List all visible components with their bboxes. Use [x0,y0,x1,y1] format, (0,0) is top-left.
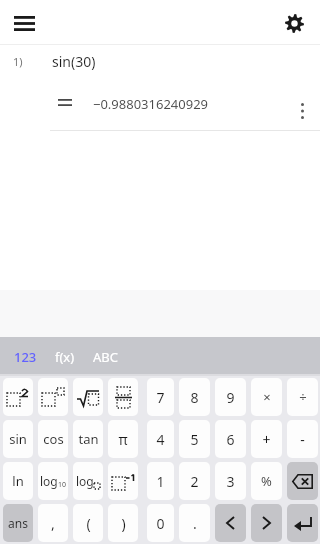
button[interactable]: % [251,462,282,500]
staticText: 4 [156,430,165,449]
staticText: 9 [226,388,235,407]
button[interactable]: 123 [11,341,40,373]
button[interactable]: 6 [215,420,246,458]
button[interactable]: Enter [287,504,318,542]
staticText: ÷ [299,388,307,406]
staticText: - [300,430,305,449]
button[interactable]: 4 [147,420,174,458]
button[interactable]: 3 [215,462,246,500]
staticText: . [193,514,197,533]
staticText: 10 [58,480,67,490]
button[interactable]: - [287,420,318,458]
button[interactable]: . [179,504,210,542]
staticText: + [262,430,271,449]
button[interactable]: f(x) [52,341,78,373]
button[interactable]: Backspace [287,462,318,500]
staticText: × [263,388,271,406]
staticText: , [51,514,55,533]
staticText: ans [8,515,28,531]
button[interactable]: 0 [147,504,174,542]
button[interactable]: × [251,378,282,416]
button[interactable]: sin [3,420,33,458]
staticText: cos [43,430,64,448]
button[interactable]: 1) [0,45,320,133]
button[interactable]: ans [3,504,33,542]
button[interactable]: Inverse [108,462,138,500]
button[interactable]: ÷ [287,378,318,416]
button[interactable]: 1 [147,462,174,500]
staticText: ABC [93,348,118,366]
staticText: f(x) [55,348,75,366]
button[interactable]: π [108,420,138,458]
staticText: log [40,473,58,489]
staticText: 7 [156,388,165,407]
button[interactable]: ln [3,462,33,500]
staticText: % [261,472,272,490]
staticText: 5 [190,430,199,449]
staticText: 3 [226,472,235,491]
button[interactable]: Square root [73,378,103,416]
staticText: sin [9,430,27,448]
button[interactable]: Power [38,378,68,416]
staticText: 1 [156,472,165,491]
button[interactable]: 8 [179,378,210,416]
staticText: ) [121,514,126,533]
button[interactable]: 5 [179,420,210,458]
button[interactable]: Log base ten [38,462,68,500]
button[interactable]: ( [73,504,103,542]
staticText: −0.9880316240929 [93,95,209,113]
staticText: log [76,473,94,489]
button[interactable]: Left [215,504,246,542]
button[interactable]: , [38,504,68,542]
button[interactable]: 7 [147,378,174,416]
staticText: tan [78,430,99,448]
staticText: sin(30) [52,52,96,71]
button[interactable]: 2 [179,462,210,500]
button[interactable]: Right [251,504,282,542]
button[interactable]: Log base [73,462,103,500]
button[interactable]: Settings [274,3,314,43]
button[interactable]: ) [108,504,138,542]
staticText: π [118,430,128,449]
staticText: 2 [190,472,199,491]
staticText: 6 [226,430,235,449]
button[interactable]: Menu [4,3,44,43]
button[interactable]: ABC [90,341,121,373]
staticText: 8 [190,388,199,407]
staticText: ( [86,514,91,533]
button[interactable]: cos [38,420,68,458]
button[interactable]: tan [73,420,103,458]
staticText: 0 [156,514,165,533]
button[interactable]: Square [3,378,33,416]
button[interactable]: Fraction [108,378,138,416]
staticText: 1) [13,54,23,69]
staticText: ln [12,472,24,490]
button[interactable]: More options [289,94,315,128]
button[interactable]: + [251,420,282,458]
staticText: 123 [14,348,37,366]
button[interactable]: 9 [215,378,246,416]
